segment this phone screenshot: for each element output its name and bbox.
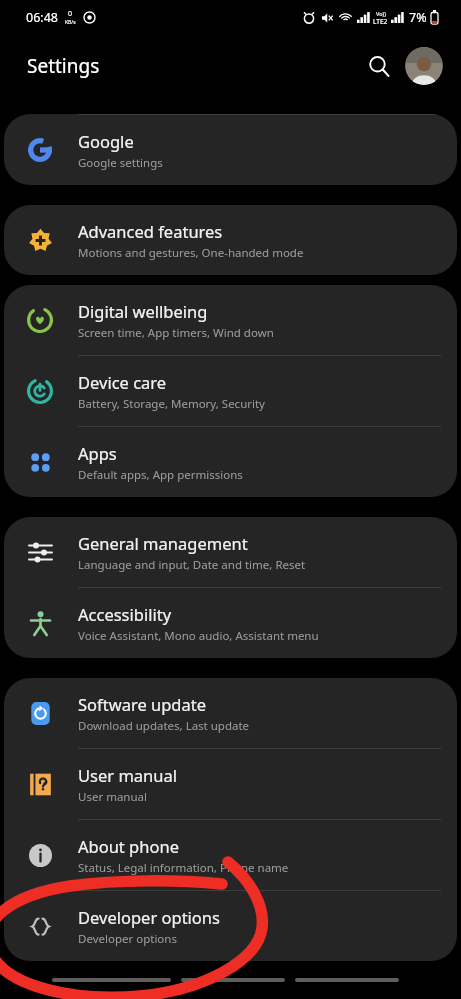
staticText: Developer options [78, 931, 177, 947]
staticText: 7% [409, 9, 427, 26]
button[interactable]: Profile [405, 47, 443, 85]
staticText: Software update [78, 693, 206, 715]
staticText: 06:48 [26, 9, 58, 26]
staticText: Vo)) [376, 10, 386, 17]
staticText: KB/s [65, 19, 76, 26]
button[interactable]: Search [359, 46, 399, 86]
staticText: Apps [78, 442, 117, 464]
button[interactable]: Apps [4, 427, 457, 497]
staticText: User manual [78, 764, 177, 786]
staticText: Developer options [78, 906, 220, 928]
staticText: Accessibility [78, 603, 172, 625]
button[interactable]: Accessibility [4, 588, 457, 658]
button[interactable]: Developer options [4, 891, 457, 961]
staticText: Google settings [78, 155, 163, 171]
staticText: Battery, Storage, Memory, Security [78, 396, 265, 412]
staticText: Default apps, App permissions [78, 467, 243, 483]
staticText: Voice Assistant, Mono audio, Assistant m… [78, 628, 319, 644]
button[interactable]: General management [4, 517, 457, 587]
staticText: Device care [78, 371, 167, 393]
staticText: Digital wellbeing [78, 300, 208, 322]
button[interactable]: Device care [4, 356, 457, 426]
staticText: Advanced features [78, 220, 223, 242]
button[interactable]: Software update [4, 678, 457, 748]
button[interactable]: Advanced features [4, 205, 457, 275]
staticText: Settings [27, 53, 100, 79]
button[interactable]: About phone [4, 820, 457, 890]
staticText: Download updates, Last update [78, 718, 250, 734]
staticText: 0 [68, 9, 73, 19]
button[interactable]: Digital wellbeing [4, 285, 457, 355]
staticText: General management [78, 532, 248, 554]
staticText: Language and input, Date and time, Reset [78, 557, 306, 573]
staticText: Google [78, 130, 134, 152]
staticText: Screen time, App timers, Wind down [78, 325, 274, 341]
button[interactable]: User manual [4, 749, 457, 819]
staticText: Status, Legal information, Phone name [78, 860, 289, 876]
staticText: Motions and gestures, One-handed mode [78, 245, 304, 261]
button[interactable]: Google [4, 115, 457, 185]
staticText: LTE2 [373, 17, 388, 26]
staticText: About phone [78, 835, 179, 857]
staticText: User manual [78, 789, 147, 805]
